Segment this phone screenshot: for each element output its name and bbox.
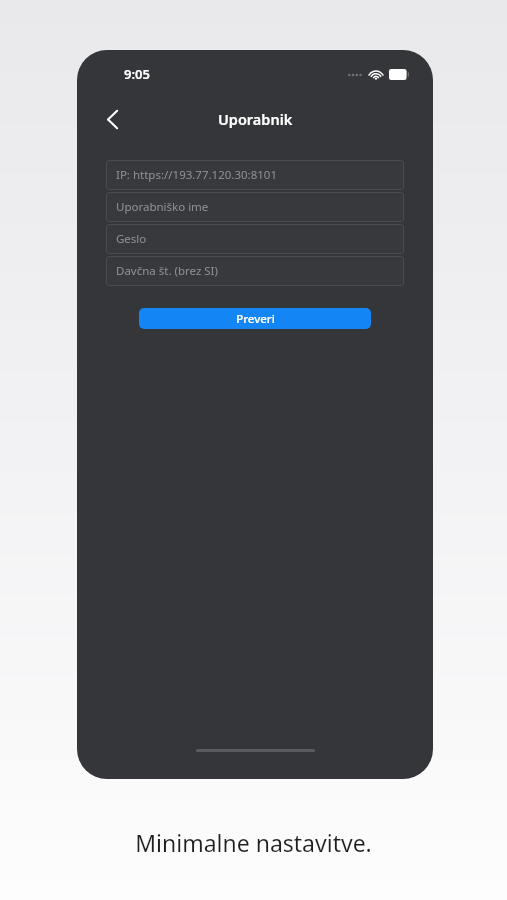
button[interactable]: Preveri — [139, 308, 371, 329]
staticText: Uporabnik — [218, 109, 293, 129]
staticText: Davčna št. (brez SI) — [116, 263, 218, 279]
staticText: Minimalne nastavitve. — [135, 827, 372, 858]
button[interactable]: Back — [95, 102, 129, 136]
staticText: Geslo — [116, 231, 147, 247]
button[interactable]: IP: https://193.77.120.30:8101 — [106, 160, 404, 190]
staticText: IP: https://193.77.120.30:8101 — [116, 167, 277, 183]
button[interactable]: Uporabniško ime — [106, 192, 404, 222]
staticText: Preveri — [236, 311, 275, 327]
button[interactable]: Davčna št. (brez SI) — [106, 256, 404, 286]
staticText: Uporabniško ime — [116, 199, 209, 215]
button[interactable]: Geslo — [106, 224, 404, 254]
staticText: 9:05 — [124, 65, 150, 83]
